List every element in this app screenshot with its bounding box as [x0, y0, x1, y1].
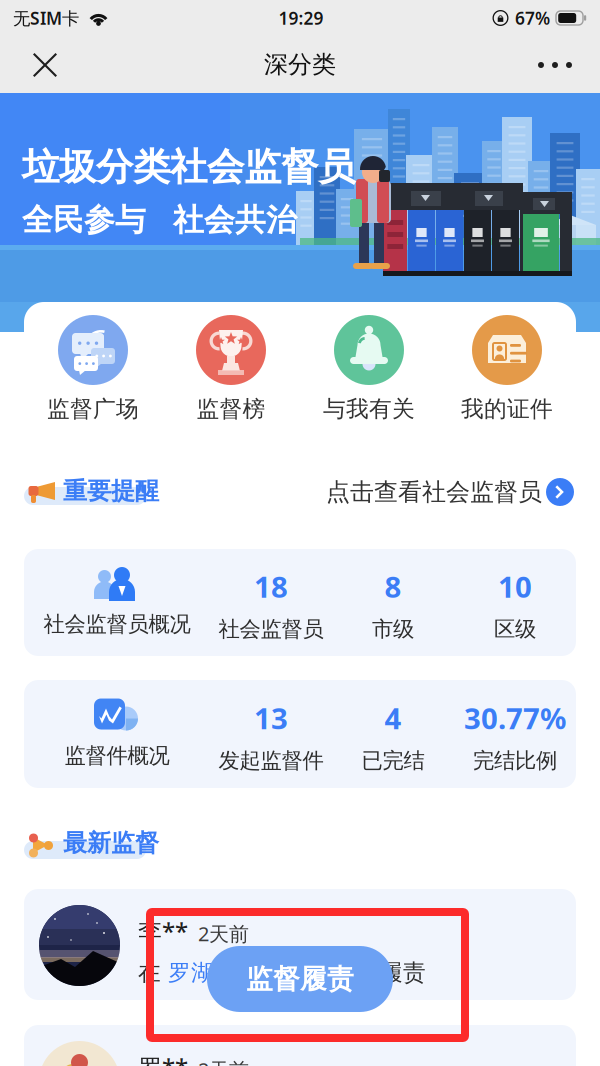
button[interactable]: 罗** [24, 1025, 576, 1066]
staticText: 市级 [372, 616, 414, 642]
button[interactable]: 我的证件 [438, 302, 576, 445]
staticText: 社会监督员 [218, 616, 323, 642]
staticText: 深分类 [264, 50, 336, 79]
staticText: 罗湖区 [168, 959, 237, 987]
button[interactable]: 点击查看社会监督员 [326, 478, 548, 506]
button[interactable]: 监督榜 [162, 302, 300, 445]
staticText: 监督件概况 [64, 742, 169, 769]
staticText: 区级 [494, 616, 536, 642]
staticText: 监督履责 [246, 963, 354, 995]
staticText: 2天前 [198, 1056, 249, 1066]
staticText: 监督广场 [47, 395, 139, 423]
staticText: 13 [254, 698, 288, 737]
staticText: 18 [254, 567, 288, 606]
staticText: 与我有关 [323, 395, 415, 423]
staticText: 在 [138, 959, 168, 987]
staticText: 完结比例 [473, 747, 557, 774]
staticText: 8 [384, 567, 401, 606]
staticText: 67% [515, 6, 550, 29]
staticText: 最新监督 [63, 828, 159, 858]
button[interactable]: 更多 [524, 42, 586, 88]
staticText: 4 [384, 698, 401, 737]
staticText: 点击查看社会监督员 [326, 477, 542, 507]
staticText: 李** [138, 915, 188, 947]
staticText: 30.77% [464, 698, 566, 737]
button[interactable]: 监督广场 [24, 302, 162, 445]
staticText: 发起监督件 [218, 747, 323, 774]
staticText: 全民参与 社会共治 [22, 201, 297, 239]
staticText: 2天前 [198, 920, 249, 947]
button[interactable]: 查看详情 [546, 478, 574, 506]
staticText: 已完结 [361, 747, 424, 774]
staticText: 10 [498, 567, 532, 606]
staticText: 监督榜 [196, 395, 265, 423]
staticText: 重要提醒 [63, 476, 159, 506]
staticText: 社会监督员概况 [43, 611, 190, 637]
button[interactable]: 监督件概况 [24, 680, 576, 788]
staticText: 垃圾分类社会监督员 [22, 144, 355, 190]
button[interactable]: 与我有关 [300, 302, 438, 445]
button[interactable]: 社会监督员概况 [24, 549, 576, 656]
staticText: 进行了 监督履责 [237, 959, 426, 987]
staticText: 罗** [138, 1051, 188, 1066]
staticText: 无SIM卡 [13, 6, 79, 29]
button[interactable]: 关闭 [14, 42, 76, 88]
staticText: 我的证件 [461, 395, 553, 423]
staticText: 19:29 [278, 6, 323, 29]
button[interactable]: 李** [24, 889, 576, 1000]
